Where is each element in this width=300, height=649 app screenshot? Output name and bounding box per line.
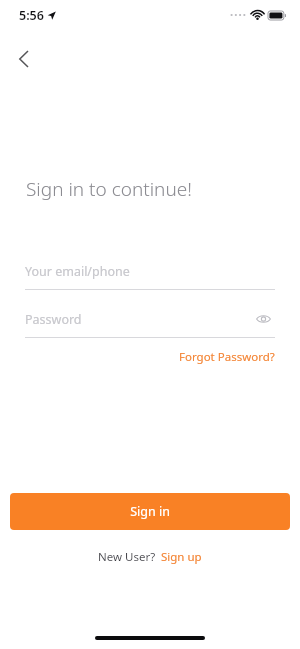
- button[interactable]: Back: [6, 42, 40, 76]
- button[interactable]: Forgot Password?: [179, 349, 275, 365]
- staticText: Password: [25, 311, 82, 328]
- staticText: Forgot Password?: [179, 349, 275, 365]
- button[interactable]: Sign in: [10, 493, 290, 530]
- button[interactable]: Show password: [251, 307, 275, 331]
- staticText: Sign in to continue!: [26, 176, 192, 202]
- button[interactable]: Your email/phone: [25, 259, 275, 290]
- button[interactable]: Sign up: [161, 549, 202, 565]
- staticText: Sign up: [161, 549, 202, 565]
- staticText: New User?: [98, 549, 156, 565]
- staticText: Your email/phone: [25, 263, 130, 280]
- staticText: Sign in: [130, 503, 170, 520]
- staticText: 5:56: [19, 7, 44, 24]
- button[interactable]: Password: [25, 307, 275, 331]
